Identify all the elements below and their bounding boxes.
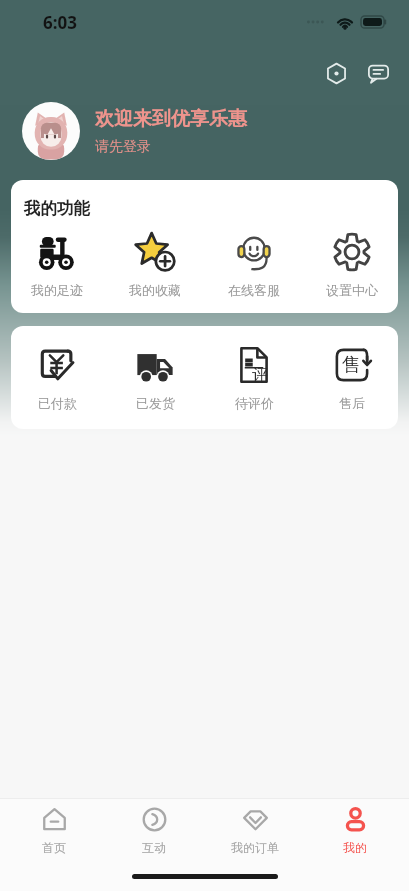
button[interactable]: Scan	[319, 56, 353, 90]
staticText: 我的	[343, 840, 367, 855]
staticText: 我的订单	[231, 840, 279, 855]
button[interactable]: 首页	[8, 806, 100, 855]
staticText: 已付款	[38, 395, 77, 411]
button[interactable]: 我的订单	[209, 806, 301, 855]
button[interactable]: 评	[215, 342, 293, 413]
button[interactable]: 互动	[108, 806, 200, 855]
staticText: 评	[252, 365, 268, 385]
staticText: 在线客服	[228, 282, 280, 298]
staticText: 我的足迹	[31, 282, 83, 298]
button[interactable]: 在线客服	[215, 229, 293, 300]
staticText: 售	[342, 353, 361, 377]
button[interactable]: 我的收藏	[116, 229, 194, 300]
button[interactable]: 已付款	[18, 342, 96, 413]
button[interactable]: 欢迎来到优享乐惠	[22, 102, 409, 160]
staticText: 首页	[42, 840, 66, 855]
staticText: 售后	[339, 395, 365, 411]
staticText: 设置中心	[326, 282, 378, 298]
button[interactable]: 售	[313, 342, 391, 413]
staticText: 请先登录	[95, 138, 151, 156]
button[interactable]: 我的	[309, 806, 401, 855]
button[interactable]: 设置中心	[313, 229, 391, 300]
staticText: 已发货	[136, 395, 175, 411]
staticText: 6:03	[43, 11, 77, 34]
staticText: 我的功能	[24, 198, 90, 219]
staticText: 我的收藏	[129, 282, 181, 298]
button[interactable]: Messages	[361, 56, 395, 90]
staticText: 待评价	[235, 395, 274, 411]
staticText: 欢迎来到优享乐惠	[95, 107, 247, 131]
staticText: 互动	[142, 840, 166, 855]
button[interactable]: 我的足迹	[18, 229, 96, 300]
button[interactable]: 已发货	[116, 342, 194, 413]
